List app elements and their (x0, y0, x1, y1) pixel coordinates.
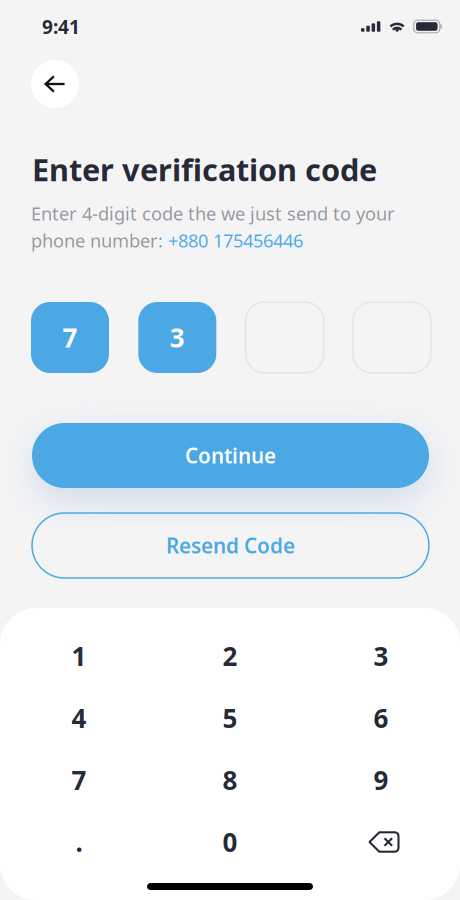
staticText: 7 (62, 320, 77, 355)
button[interactable]: Continue (32, 423, 429, 488)
staticText: 9 (373, 762, 388, 798)
button[interactable]: Back (31, 60, 79, 108)
button[interactable]: 8 (154, 749, 305, 811)
button[interactable]: 0 (154, 811, 305, 873)
staticText: 9:41 (42, 13, 80, 39)
button[interactable]: Delete (305, 811, 456, 873)
staticText: 3 (373, 638, 388, 674)
button[interactable]: 4 (3, 687, 154, 749)
button[interactable]: Empty code digit (353, 302, 431, 373)
button[interactable]: 2 (154, 625, 305, 687)
button[interactable]: 1 (3, 625, 154, 687)
button[interactable]: Code digit 7 (31, 302, 109, 373)
button[interactable]: 9 (305, 749, 456, 811)
staticText: 8 (222, 762, 237, 798)
button[interactable]: Code digit 3 (138, 302, 216, 373)
staticText: Resend Code (166, 531, 295, 559)
button[interactable]: Empty code digit (246, 302, 324, 373)
staticText: Enter 4-digit code the we just send to y… (31, 201, 395, 226)
staticText: . (75, 824, 82, 860)
staticText: Continue (185, 441, 276, 469)
staticText: 1 (71, 638, 86, 674)
staticText: 2 (222, 638, 237, 674)
staticText: 7 (71, 762, 86, 798)
button[interactable]: 6 (305, 687, 456, 749)
staticText: phone number: (31, 228, 168, 253)
button[interactable]: Resend Code (32, 513, 429, 578)
button[interactable]: 7 (3, 749, 154, 811)
button[interactable]: . (3, 811, 154, 873)
staticText: Enter verification code (32, 149, 377, 190)
staticText: 5 (222, 700, 237, 736)
staticText: 3 (170, 320, 185, 355)
button[interactable]: 3 (305, 625, 456, 687)
staticText: 4 (71, 700, 86, 736)
staticText: 6 (373, 700, 388, 736)
staticText: +880 175456446 (168, 228, 303, 253)
button[interactable]: 5 (154, 687, 305, 749)
staticText: 0 (222, 824, 237, 860)
